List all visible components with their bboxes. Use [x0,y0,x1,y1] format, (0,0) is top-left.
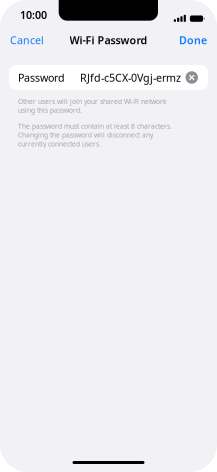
staticText: Cancel [10,33,44,47]
staticText: Password [18,70,65,85]
button[interactable]: Clear text [185,71,198,84]
button[interactable]: Cancel [0,27,52,53]
staticText: 10:00 [20,8,47,22]
staticText: Wi-Fi Password [69,33,147,47]
staticText: Other users will join your shared Wi-Fi … [18,97,167,115]
staticText: Done [179,33,207,47]
button[interactable]: Done [171,27,217,53]
staticText: The password must contain at least 8 cha… [18,122,172,148]
staticText: RJfd-c5CX-0Vgj-ermz [80,70,181,85]
